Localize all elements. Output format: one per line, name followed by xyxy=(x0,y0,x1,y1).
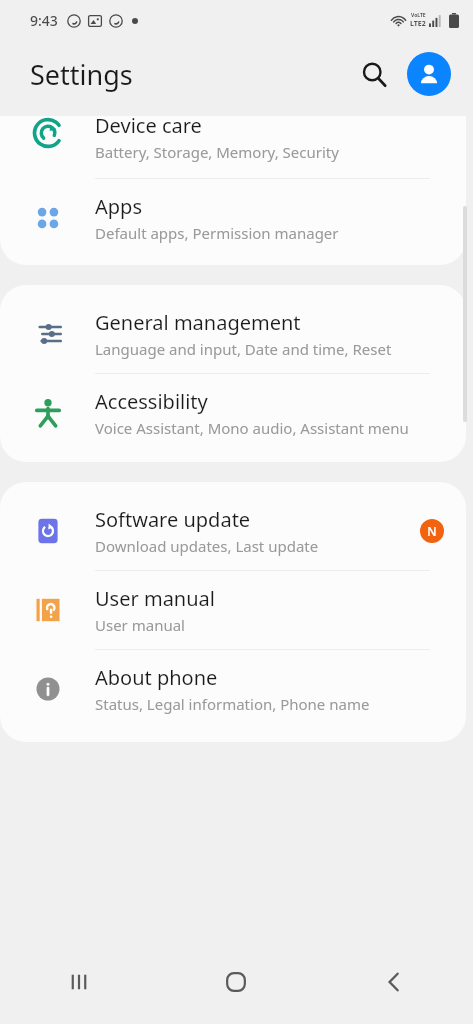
staticText: Battery, Storage, Memory, Security xyxy=(95,142,339,162)
staticText: General management xyxy=(95,309,301,336)
staticText: User manual xyxy=(95,585,215,612)
button[interactable]: Accessibility xyxy=(0,374,466,452)
staticText: N xyxy=(427,523,437,539)
button[interactable]: General management xyxy=(0,295,466,373)
button[interactable]: Apps xyxy=(0,179,466,257)
staticText: Apps xyxy=(95,193,142,220)
staticText: Device care xyxy=(95,116,202,139)
staticText: Default apps, Permission manager xyxy=(95,223,339,243)
staticText: Language and input, Date and time, Reset xyxy=(95,339,392,359)
button[interactable]: Back xyxy=(315,940,473,1024)
button[interactable]: Account xyxy=(407,52,451,96)
staticText: Voice Assistant, Mono audio, Assistant m… xyxy=(95,418,409,438)
button[interactable]: Search xyxy=(351,51,397,97)
staticText: LTE2 xyxy=(410,19,426,29)
button[interactable]: About phone xyxy=(0,650,466,728)
button[interactable]: Device care xyxy=(0,116,466,178)
button[interactable]: Software update xyxy=(0,492,466,570)
button[interactable]: User manual xyxy=(0,571,466,649)
staticText: About phone xyxy=(95,664,218,691)
staticText: Status, Legal information, Phone name xyxy=(95,694,370,714)
staticText: Accessibility xyxy=(95,388,208,415)
staticText: User manual xyxy=(95,615,185,635)
staticText: VoLTE xyxy=(411,12,426,19)
button[interactable]: Recent apps xyxy=(0,940,157,1024)
button[interactable]: Home xyxy=(157,940,315,1024)
staticText: Settings xyxy=(30,56,133,93)
staticText: 9:43 xyxy=(30,11,58,30)
staticText: Software update xyxy=(95,506,251,533)
staticText: Download updates, Last update xyxy=(95,536,319,556)
